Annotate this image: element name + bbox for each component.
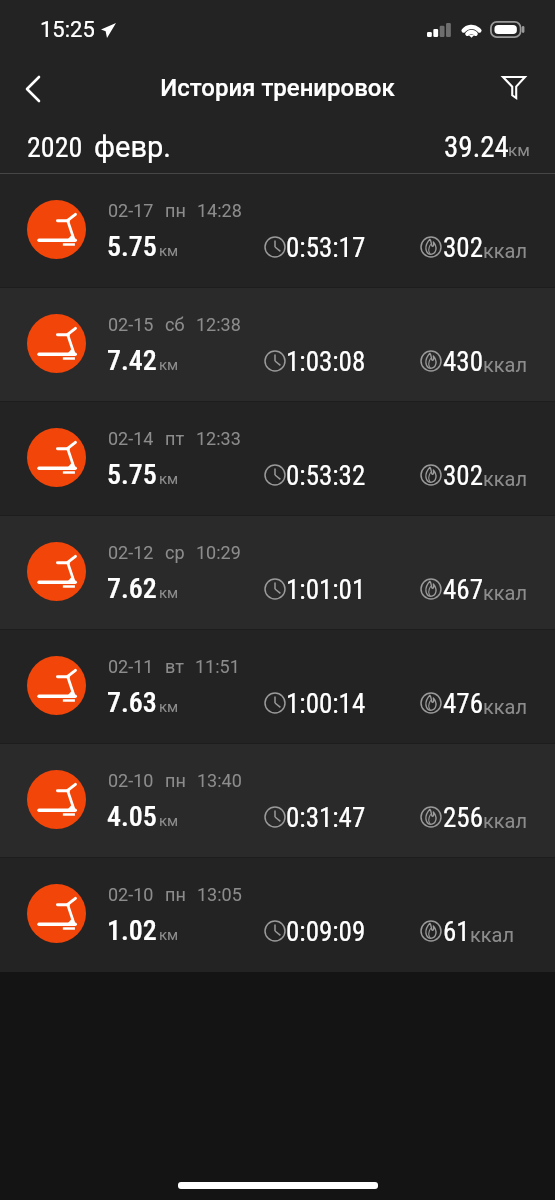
button[interactable]: 02-17 — [0, 174, 555, 288]
staticText: км — [508, 140, 530, 160]
staticText: пн — [165, 770, 186, 791]
staticText: 5.75 — [107, 230, 157, 263]
staticText: 12:33 — [196, 428, 241, 449]
staticText: 13:05 — [197, 884, 242, 905]
button[interactable]: 02-12 — [0, 516, 555, 630]
staticText: км — [159, 926, 179, 944]
staticText: 430 — [443, 346, 483, 378]
staticText: 02-10 — [108, 770, 154, 791]
staticText: 302 — [443, 232, 483, 264]
staticText: 5.75 — [107, 458, 157, 491]
staticText: 1:00:14 — [286, 688, 366, 720]
staticText: км — [159, 356, 179, 374]
staticText: 11:51 — [195, 656, 240, 677]
button[interactable]: 02-10 — [0, 744, 555, 858]
staticText: 61 — [443, 916, 470, 948]
button[interactable]: 02-10 — [0, 858, 555, 972]
staticText: км — [159, 698, 179, 716]
staticText: пн — [165, 200, 186, 221]
staticText: км — [159, 584, 179, 602]
staticText: ср — [165, 542, 185, 563]
staticText: 256 — [443, 802, 483, 834]
staticText: 467 — [443, 574, 483, 606]
button[interactable]: Filter — [483, 56, 545, 118]
staticText: ккал — [483, 695, 528, 718]
staticText: 2020 — [27, 131, 83, 164]
staticText: 0:53:32 — [286, 460, 366, 492]
staticText: ккал — [483, 809, 528, 832]
staticText: сб — [165, 314, 185, 335]
staticText: пн — [165, 884, 186, 905]
staticText: 1.02 — [107, 914, 157, 947]
staticText: 1:03:08 — [286, 346, 366, 378]
staticText: 02-17 — [108, 200, 154, 221]
staticText: км — [159, 812, 179, 830]
button[interactable]: 02-11 — [0, 630, 555, 744]
staticText: 7.42 — [107, 344, 157, 377]
staticText: ккал — [483, 239, 528, 262]
staticText: 7.63 — [107, 686, 157, 719]
staticText: 12:38 — [196, 314, 241, 335]
staticText: 13:40 — [197, 770, 242, 791]
staticText: 02-10 — [108, 884, 154, 905]
staticText: 0:31:47 — [286, 802, 366, 834]
button[interactable]: 02-14 — [0, 402, 555, 516]
staticText: февр. — [94, 130, 171, 164]
staticText: 39.24 — [444, 130, 509, 164]
staticText: 0:53:17 — [286, 232, 366, 264]
staticText: вт — [165, 656, 184, 677]
staticText: пт — [165, 428, 185, 449]
staticText: км — [159, 242, 179, 260]
staticText: 02-12 — [108, 542, 154, 563]
staticText: 10:29 — [196, 542, 241, 563]
staticText: 02-15 — [108, 314, 154, 335]
staticText: 0:09:09 — [286, 916, 366, 948]
button[interactable]: Back — [0, 58, 62, 120]
staticText: ккал — [483, 467, 528, 490]
staticText: 15:25 — [40, 17, 95, 43]
staticText: ккал — [470, 923, 515, 946]
staticText: ккал — [483, 581, 528, 604]
staticText: 7.62 — [107, 572, 157, 605]
staticText: 14:28 — [197, 200, 242, 221]
staticText: 02-11 — [108, 656, 154, 677]
staticText: 4.05 — [107, 800, 157, 833]
staticText: км — [159, 470, 179, 488]
staticText: История тренировок — [160, 74, 395, 102]
staticText: 476 — [443, 688, 483, 720]
button[interactable]: 02-15 — [0, 288, 555, 402]
staticText: 302 — [443, 460, 483, 492]
staticText: 1:01:01 — [286, 574, 366, 606]
staticText: ккал — [483, 353, 528, 376]
staticText: 02-14 — [108, 428, 154, 449]
